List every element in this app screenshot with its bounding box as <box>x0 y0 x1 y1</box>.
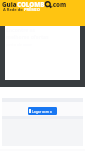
staticText: .com <box>51 0 67 8</box>
button[interactable]: Logar com o Facebook <box>28 107 57 115</box>
staticText: COLOMB <box>17 0 45 8</box>
staticText: PRÊMIO <box>24 7 40 12</box>
staticText: Guia <box>2 0 17 8</box>
staticText: Logar com o Facebook <box>31 109 56 114</box>
staticText: A Rede do <box>3 7 24 12</box>
